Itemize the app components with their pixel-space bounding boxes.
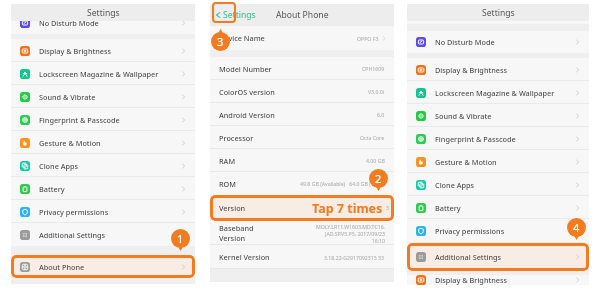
staticText: About Phone [276,9,329,21]
staticText: Battery [435,203,461,213]
button[interactable]: Fingerprint & Passcode [407,127,589,150]
staticText: 3 [217,34,224,49]
staticText: About Phone [39,262,85,272]
button[interactable]: Android Version [210,103,394,126]
staticText: Lockscreen Magazine & Wallpaper [435,88,555,98]
button[interactable]: Kernel Version [210,245,394,269]
staticText: 4 [573,220,580,235]
button[interactable]: ROM [210,172,394,195]
button[interactable]: Display & Brightness [11,39,195,62]
button[interactable]: Sound & Vibrate [407,104,589,127]
staticText: Baseband Version [219,223,254,243]
staticText: Processor [219,133,254,143]
staticText: Settings [223,9,256,21]
staticText: Sound & Vibrate [39,92,96,102]
staticText: Gesture & Motion [39,138,101,148]
button[interactable]: Gesture & Motion [11,131,195,154]
button[interactable]: Display & Brightness [407,58,589,81]
staticText: Clone Apps [39,161,79,171]
staticText: OPPO F3 [357,35,379,42]
button[interactable]: Model Number [210,57,394,80]
staticText: 6.0 [377,111,385,118]
button[interactable]: Processor [210,126,394,149]
staticText: Android Version [219,110,275,120]
button[interactable]: Privacy permissions [407,219,589,242]
staticText: 3 [386,205,389,212]
staticText: Fingerprint & Passcode [435,134,516,144]
staticText: ColorOS version [219,87,275,97]
button[interactable]: Battery [407,196,589,219]
button[interactable]: Baseband Version [210,221,394,245]
staticText: CPH1609 [362,65,385,72]
staticText: MOLY.LR11.W1603.MD.TC16. JAD.SP.V5.P5, 2… [315,223,385,244]
staticText: Privacy permissions [435,226,505,236]
staticText: 4.00 GB [366,157,385,164]
button[interactable]: Battery [11,177,195,200]
button[interactable]: Sound & Vibrate [11,85,195,108]
button[interactable]: Privacy permissions [11,200,195,223]
staticText: Privacy permissions [39,207,109,217]
button[interactable]: About Phone [11,255,195,278]
button[interactable]: Lockscreen Magazine & Wallpaper [407,81,589,104]
staticText: Sound & Vibrate [435,111,492,121]
button[interactable]: No Disturb Mode [11,12,195,34]
staticText: RAM [219,156,236,166]
staticText: Version [219,203,246,213]
staticText: Display & Brightness [39,46,112,56]
staticText: 1 [177,231,184,246]
staticText: Gesture & Motion [435,157,497,167]
staticText: Additional Settings [435,252,502,262]
button[interactable]: ColorOS version [210,80,394,103]
button[interactable]: Lockscreen Magazine & Wallpaper [11,62,195,85]
staticText: Octa Core [360,134,385,141]
staticText: No Disturb Mode [435,37,495,47]
staticText: Kernel Version [219,252,270,262]
staticText: Fingerprint & Passcode [39,115,120,125]
staticText: 49.8 GB (Available) 64.0 GB (Total) [300,180,385,187]
staticText: No Disturb Mode [39,18,99,28]
staticText: Lockscreen Magazine & Wallpaper [39,69,159,79]
button[interactable]: Additional Settings [11,223,195,246]
button[interactable]: Gesture & Motion [407,150,589,173]
staticText: 3.18.22-G2917092315 33 [324,254,385,261]
staticText: V3.0.0i [368,88,385,95]
button[interactable]: Additional Settings [407,243,589,271]
button[interactable]: Clone Apps [407,173,589,196]
staticText: Clone Apps [435,180,475,190]
staticText: Display & Brightness [435,65,508,75]
staticText: Settings [482,7,515,19]
staticText: Additional Settings [39,230,106,240]
staticText: Display & Brightness [435,275,508,285]
button[interactable]: No Disturb Mode [407,31,589,53]
button[interactable]: RAM [210,149,394,172]
staticText: Battery [39,184,65,194]
staticText: Model Number [219,64,272,74]
staticText: ROM [219,179,237,189]
staticText: Tap 7 times [312,200,383,217]
button[interactable]: Version [210,195,394,221]
button[interactable]: Display & Brightness [407,275,589,285]
staticText: Settings [87,7,120,19]
button[interactable]: Clone Apps [11,154,195,177]
button[interactable]: Fingerprint & Passcode [11,108,195,131]
staticText: 2 [375,171,382,186]
button[interactable]: Device Name [210,26,394,50]
staticText: Device Name [219,33,265,43]
button[interactable]: Back to Settings [214,4,394,26]
